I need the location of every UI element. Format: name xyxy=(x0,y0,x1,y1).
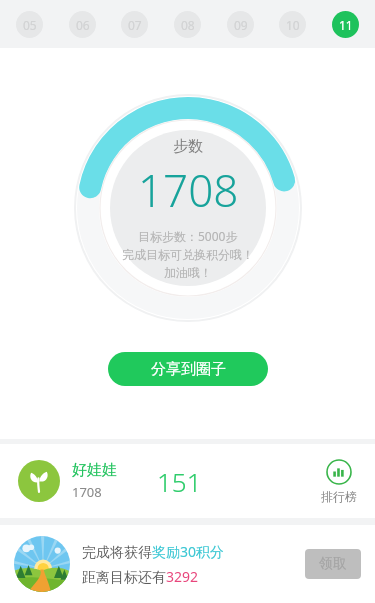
staticText: 09 xyxy=(234,17,248,33)
staticText: 05 xyxy=(23,17,37,33)
button[interactable]: 排行榜 xyxy=(321,459,357,504)
other: 排行榜 xyxy=(326,459,352,485)
staticText: 分享到圈子 xyxy=(151,360,226,379)
button[interactable]: 分享到圈子 xyxy=(108,352,268,386)
staticText: 好娃娃 xyxy=(72,461,117,480)
button[interactable]: 好娃娃 xyxy=(0,444,375,518)
staticText: 距离目标还有3292 xyxy=(82,567,199,586)
staticText: 步数 xyxy=(173,137,203,156)
staticText: 目标步数：5000步 xyxy=(138,228,238,244)
button[interactable]: 07 xyxy=(121,11,148,38)
staticText: 1708 xyxy=(138,160,239,220)
staticText: 151 xyxy=(157,464,202,499)
staticText: 排行榜 xyxy=(321,489,357,504)
button[interactable]: 09 xyxy=(227,11,254,38)
button[interactable]: 10 xyxy=(279,11,306,38)
button[interactable]: 05 xyxy=(16,11,43,38)
staticText: 完成将获得奖励30积分 xyxy=(82,542,225,561)
button[interactable]: 11 xyxy=(332,11,359,38)
staticText: 07 xyxy=(128,17,142,33)
staticText: 加油哦！ xyxy=(164,265,212,280)
button[interactable]: 06 xyxy=(69,11,96,38)
button[interactable]: 08 xyxy=(174,11,201,38)
button[interactable]: 领取 xyxy=(305,549,361,579)
staticText: 08 xyxy=(181,17,195,33)
staticText: 11 xyxy=(339,17,353,33)
staticText: 1708 xyxy=(72,483,102,501)
staticText: 06 xyxy=(76,17,90,33)
staticText: 领取 xyxy=(319,555,347,573)
staticText: 10 xyxy=(286,17,300,33)
staticText: 完成目标可兑换积分哦！ xyxy=(122,247,254,262)
